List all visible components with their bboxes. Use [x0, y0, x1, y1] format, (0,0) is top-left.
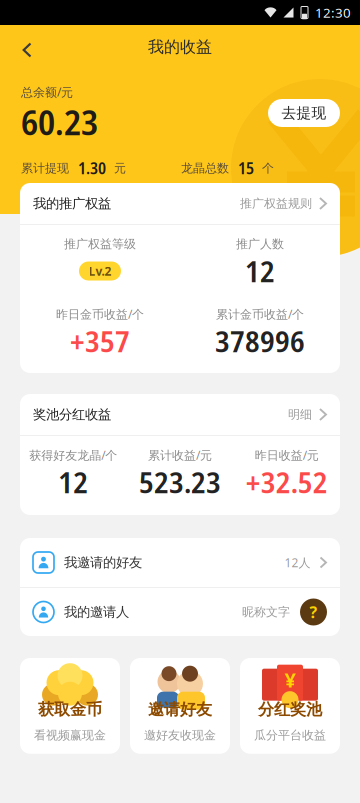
staticText: 12 — [58, 462, 88, 502]
staticText: 我的推广权益 — [33, 195, 111, 212]
staticText: 12人 — [284, 554, 310, 570]
staticText: 获得好友龙晶/个 — [29, 447, 117, 463]
staticText: 分红奖池 — [258, 700, 322, 719]
button[interactable]: 邀请好友 — [130, 658, 230, 754]
staticText: 获取金币 — [38, 700, 102, 719]
staticText: 昨日金币收益/个 — [56, 306, 144, 322]
button[interactable]: 我的邀请人 — [20, 588, 340, 636]
staticText: 累计收益/元 — [148, 447, 212, 463]
staticText: 378996 — [215, 321, 305, 361]
button[interactable]: ¥ — [240, 658, 340, 754]
staticText: +357 — [70, 321, 130, 361]
staticText: 累计提现 — [21, 161, 69, 175]
staticText: 12 — [245, 251, 275, 291]
staticText: 15 — [238, 157, 254, 179]
button[interactable]: 奖池分红收益 — [20, 394, 340, 435]
button[interactable]: Back — [5, 25, 49, 69]
staticText: 明细 — [288, 407, 312, 422]
staticText: 昵称文字 — [242, 605, 290, 619]
staticText: 12:30 — [315, 4, 351, 21]
button[interactable]: 去提现 — [268, 99, 340, 127]
staticText: 去提现 — [281, 104, 326, 122]
button[interactable]: 获取金币 — [20, 658, 120, 754]
staticText: ¥ — [284, 666, 295, 693]
staticText: 元 — [114, 161, 126, 175]
staticText: ? — [309, 601, 317, 623]
staticText: 1.30 — [78, 157, 106, 179]
staticText: 总余额/元 — [21, 84, 73, 100]
staticText: 60.23 — [21, 99, 98, 145]
staticText: 看视频赢现金 — [34, 728, 106, 743]
staticText: 推广权益规则 — [240, 196, 312, 211]
staticText: 奖池分红收益 — [33, 406, 111, 423]
staticText: 我的邀请人 — [64, 604, 129, 620]
staticText: 累计金币收益/个 — [216, 306, 304, 322]
staticText: 个 — [262, 161, 274, 175]
button[interactable]: 我邀请的好友 — [20, 538, 340, 587]
staticText: 我的收益 — [148, 37, 212, 57]
staticText: 瓜分平台收益 — [254, 728, 326, 743]
staticText: 推广人数 — [236, 237, 284, 251]
staticText: 523.23 — [139, 462, 221, 502]
staticText: 邀好友收现金 — [144, 728, 216, 743]
staticText: +32.52 — [246, 462, 328, 502]
button[interactable]: 我的推广权益 — [20, 183, 340, 224]
staticText: 昨日收益/元 — [255, 447, 319, 463]
staticText: 推广权益等级 — [64, 237, 136, 251]
staticText: Lv.2 — [88, 263, 111, 279]
staticText: 我邀请的好友 — [64, 554, 142, 571]
staticText: 邀请好友 — [148, 700, 212, 719]
staticText: 龙晶总数 — [181, 161, 229, 175]
